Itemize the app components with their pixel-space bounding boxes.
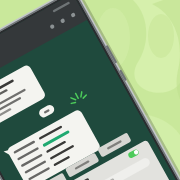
button[interactable]: WhatsApp chat promotional artwork bbox=[0, 0, 180, 180]
